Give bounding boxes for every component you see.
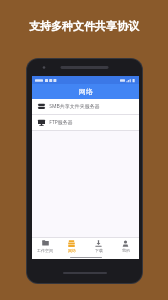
staticText: 网络 [79,87,93,96]
staticText: 工作空间 [37,248,53,253]
button[interactable]: SMB共享文件夹服务器 [32,99,139,114]
button[interactable]: 工作空间 [32,238,58,255]
button[interactable]: 网络 [58,238,85,255]
button[interactable]: 我的 [112,238,139,255]
staticText: 下载 [95,248,103,253]
staticText: SMB共享文件夹服务器 [49,103,100,110]
staticText: FTP服务器 [49,119,73,126]
button[interactable]: FTP服务器 [32,115,139,130]
staticText: 支持多种文件共享协议 [29,19,139,33]
staticText: 我的 [122,248,130,253]
button[interactable]: 下载 [85,238,112,255]
staticText: 网络 [68,248,76,253]
